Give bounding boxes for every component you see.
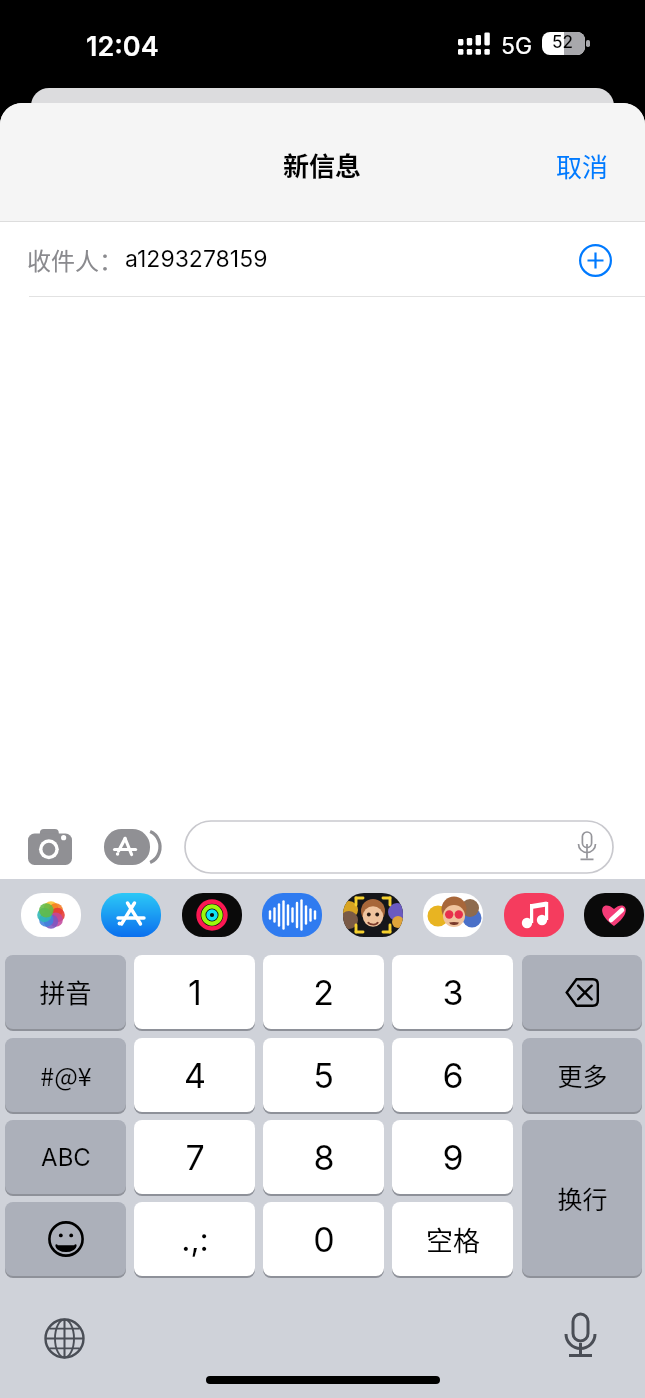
button[interactable]: .,: [134, 1202, 255, 1278]
button[interactable]: Dictation [559, 1313, 602, 1359]
staticText: 5G [501, 32, 533, 60]
staticText: 9 [442, 1137, 464, 1178]
button[interactable]: iMessage text field [185, 821, 613, 873]
staticText: 拼音 [39, 973, 92, 1011]
staticText: 12:04 [86, 30, 159, 63]
button[interactable]: 换行 [522, 1120, 642, 1278]
button[interactable]: App 3 [182, 893, 242, 937]
staticText: a1293278159 [125, 245, 268, 273]
button[interactable]: Camera [28, 829, 72, 865]
staticText: 52 [552, 32, 573, 53]
staticText: 3 [442, 972, 464, 1013]
button[interactable]: Delete [522, 955, 642, 1031]
staticText: 4 [184, 1055, 206, 1096]
button[interactable]: Apps [104, 829, 158, 865]
button[interactable]: 3 [392, 955, 513, 1031]
button[interactable]: 空格 [392, 1202, 513, 1278]
button[interactable]: 1 [134, 955, 255, 1031]
button[interactable]: App 1 [21, 893, 81, 937]
button[interactable]: 6 [392, 1038, 513, 1114]
button[interactable]: App 4 [262, 893, 322, 937]
button[interactable]: Add contact [579, 244, 612, 277]
button[interactable]: App 6 [423, 893, 483, 937]
staticText: 1 [188, 972, 202, 1013]
button[interactable]: 拼音 [5, 955, 126, 1031]
button[interactable]: 0 [263, 1202, 384, 1278]
staticText: 2 [313, 972, 334, 1013]
button[interactable]: 更多 [522, 1038, 642, 1114]
staticText: 新信息 [283, 146, 362, 184]
staticText: 6 [442, 1055, 464, 1096]
button[interactable]: 取消 [526, 133, 645, 199]
staticText: 换行 [557, 1180, 608, 1216]
staticText: 空格 [426, 1220, 480, 1259]
staticText: 收件人： [27, 242, 123, 277]
staticText: 更多 [557, 1057, 608, 1093]
staticText: ABC [41, 1143, 91, 1172]
button[interactable]: ABC [5, 1120, 126, 1196]
button[interactable]: 7 [134, 1120, 255, 1196]
button[interactable]: 2 [263, 955, 384, 1031]
button[interactable]: 4 [134, 1038, 255, 1114]
staticText: 8 [313, 1137, 335, 1178]
button[interactable]: Switch keyboard [44, 1318, 85, 1359]
button[interactable]: 收件人： [0, 222, 645, 297]
button[interactable]: App 8 [584, 893, 644, 937]
button[interactable]: App 2 [101, 893, 161, 937]
button[interactable]: 9 [392, 1120, 513, 1196]
staticText: 0 [313, 1219, 335, 1260]
staticText: 取消 [556, 147, 609, 185]
staticText: #@¥ [40, 1057, 92, 1093]
button[interactable]: Emoji [5, 1202, 126, 1278]
button[interactable]: 8 [263, 1120, 384, 1196]
button[interactable]: App 5 [343, 893, 403, 937]
staticText: .,: [181, 1220, 209, 1259]
staticText: 5 [313, 1055, 334, 1096]
button[interactable]: 5 [263, 1038, 384, 1114]
button[interactable]: #@¥ [5, 1038, 126, 1114]
button[interactable]: App 7 [504, 893, 564, 937]
staticText: 7 [185, 1137, 205, 1178]
